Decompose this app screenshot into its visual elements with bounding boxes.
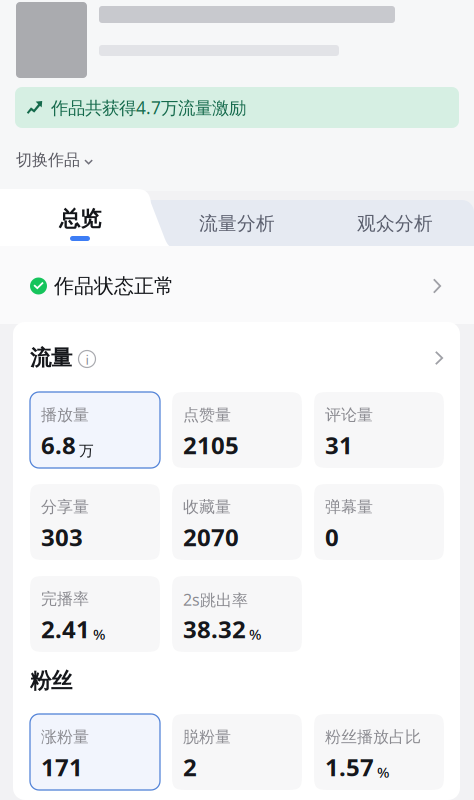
button[interactable]: 作品共获得4.7万流量激励 — [15, 87, 459, 128]
button[interactable]: 总览 — [0, 189, 182, 248]
staticText: 作品状态正常 — [54, 274, 174, 298]
button[interactable]: 涨粉量 — [30, 714, 160, 790]
staticText: 2 — [183, 751, 197, 783]
button[interactable]: 播放量 — [30, 392, 160, 468]
staticText: 收藏量 — [183, 497, 231, 517]
staticText: 弹幕量 — [325, 497, 373, 517]
staticText: 总览 — [59, 206, 101, 232]
staticText: 流量分析 — [199, 212, 275, 235]
button[interactable]: 收藏量 — [172, 484, 302, 560]
staticText: 0 — [325, 521, 339, 553]
button[interactable]: 作品状态正常 — [30, 264, 442, 308]
button[interactable]: 完播率 — [30, 576, 160, 652]
button[interactable]: 点赞量 — [172, 392, 302, 468]
staticText: 作品共获得4.7万流量激励 — [51, 96, 246, 119]
staticText: % — [249, 624, 261, 644]
staticText: 2105 — [183, 429, 239, 461]
staticText: i — [85, 351, 88, 368]
button[interactable]: 2s跳出率 — [172, 576, 302, 652]
staticText: 评论量 — [325, 405, 373, 425]
staticText: 38.32 — [183, 613, 246, 645]
staticText: 脱粉量 — [183, 727, 231, 747]
button[interactable]: 观众分析 — [316, 200, 474, 247]
button[interactable]: 分享量 — [30, 484, 160, 560]
staticText: % — [93, 624, 105, 644]
button[interactable] — [16, 2, 474, 78]
staticText: 2.41 — [41, 613, 90, 645]
staticText: 粉丝播放占比 — [325, 727, 421, 747]
button[interactable]: 粉丝播放占比 — [314, 714, 444, 790]
staticText: 31 — [325, 429, 353, 461]
staticText: 分享量 — [41, 497, 89, 517]
staticText: 2070 — [183, 521, 239, 553]
staticText: 2s跳出率 — [183, 589, 248, 610]
staticText: 涨粉量 — [41, 727, 89, 747]
button[interactable]: 评论量 — [314, 392, 444, 468]
staticText: 粉丝 — [30, 668, 72, 694]
staticText: 切换作品 — [16, 150, 80, 170]
staticText: 1.57 — [325, 751, 374, 783]
staticText: 6.8 — [41, 429, 76, 461]
button[interactable]: 切换作品 — [16, 147, 136, 173]
staticText: 171 — [41, 751, 83, 783]
button[interactable]: 弹幕量 — [314, 484, 444, 560]
staticText: 播放量 — [41, 405, 89, 425]
staticText: 303 — [41, 521, 83, 553]
staticText: 流量 — [30, 345, 72, 371]
staticText: 点赞量 — [183, 405, 231, 425]
staticText: 万 — [79, 442, 94, 460]
staticText: 完播率 — [41, 589, 89, 609]
button[interactable]: 流量分析 — [158, 200, 316, 247]
staticText: % — [377, 762, 389, 782]
button[interactable]: 脱粉量 — [172, 714, 302, 790]
staticText: 观众分析 — [357, 212, 433, 235]
